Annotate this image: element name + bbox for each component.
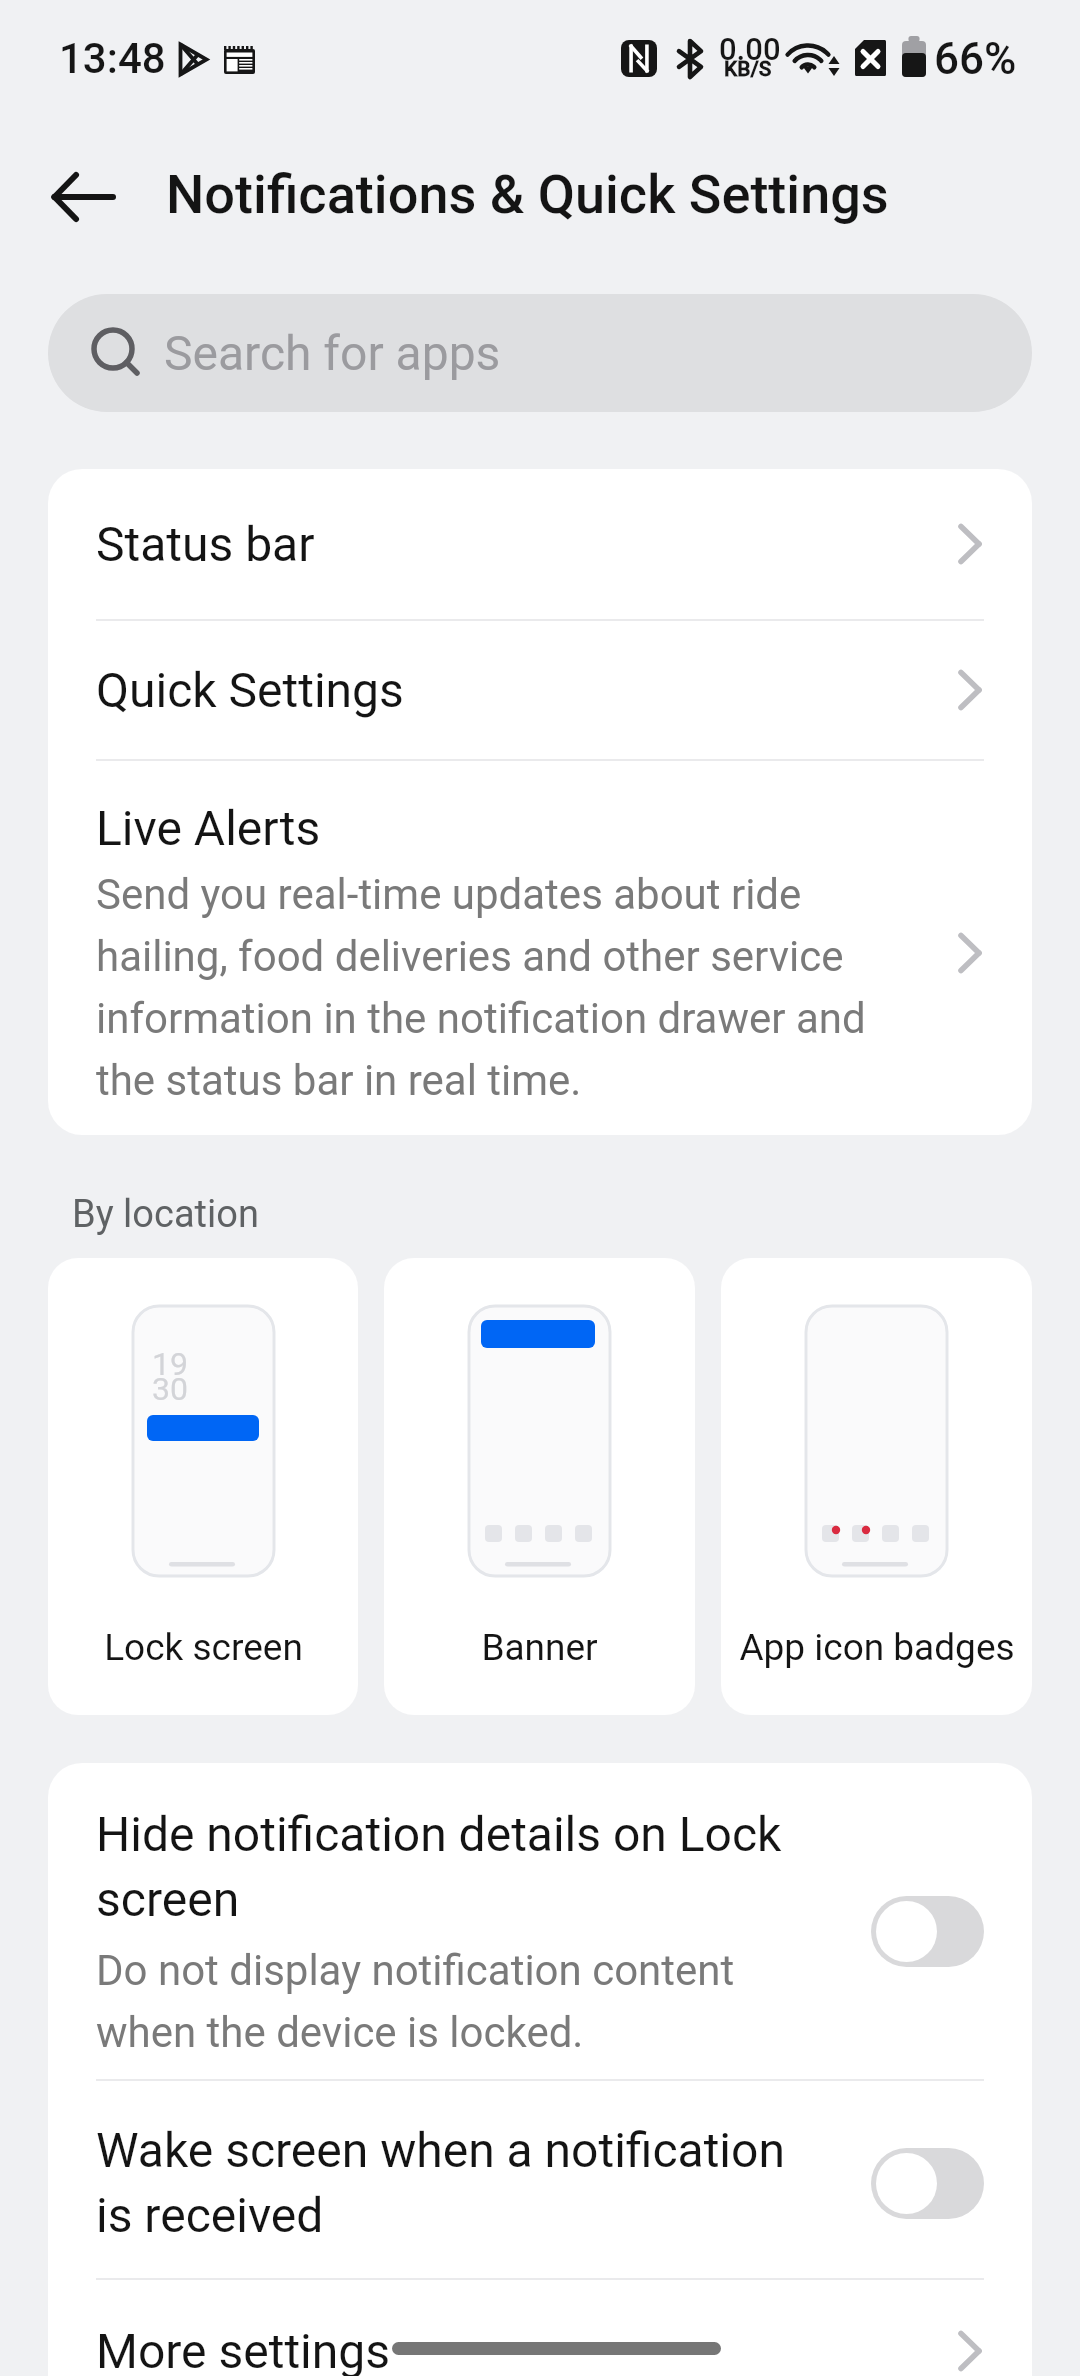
staticText: 66% [934,33,1017,85]
staticText: Hide notification details on Lock screen [96,1806,821,1928]
button[interactable]: App icon badges [721,1258,1032,1715]
staticText: 0.00 [719,31,781,67]
staticText: 19 30 [152,1345,188,1408]
staticText: Wake screen when a notification is recei… [96,2122,821,2244]
button[interactable]: Banner [384,1258,695,1715]
button[interactable]: Toggle [871,2148,984,2219]
staticText: Lock screen [104,1626,303,1669]
staticText: 13:48 [59,34,166,83]
staticText: Search for apps [164,325,501,381]
staticText: Send you real-time updates about ride ha… [96,870,928,1105]
staticText: Do not display notification content when… [96,1946,821,2057]
button[interactable]: 19 30 [48,1258,358,1715]
button[interactable]: Live Alerts [48,761,1032,1135]
staticText: By location [72,1192,259,1237]
button[interactable]: Back [28,152,138,242]
staticText: Quick Settings [96,662,958,718]
button[interactable]: More settings [48,2280,1032,2376]
staticText: Banner [481,1626,598,1669]
staticText: App icon badges [739,1626,1015,1669]
button[interactable]: Quick Settings [48,621,1032,759]
staticText: Status bar [96,516,958,572]
button[interactable]: Hide notification details on Lock screen [48,1763,1032,2079]
staticText: Live Alerts [96,800,321,856]
button[interactable]: Wake screen when a notification is recei… [48,2081,1032,2278]
button[interactable]: Toggle [871,1896,984,1967]
staticText: KB/S [724,57,772,82]
staticText: Notifications & Quick Settings [166,163,889,226]
button[interactable]: Status bar [48,469,1032,619]
button[interactable]: Search for apps [48,294,1032,412]
staticText: More settings [96,2323,958,2376]
